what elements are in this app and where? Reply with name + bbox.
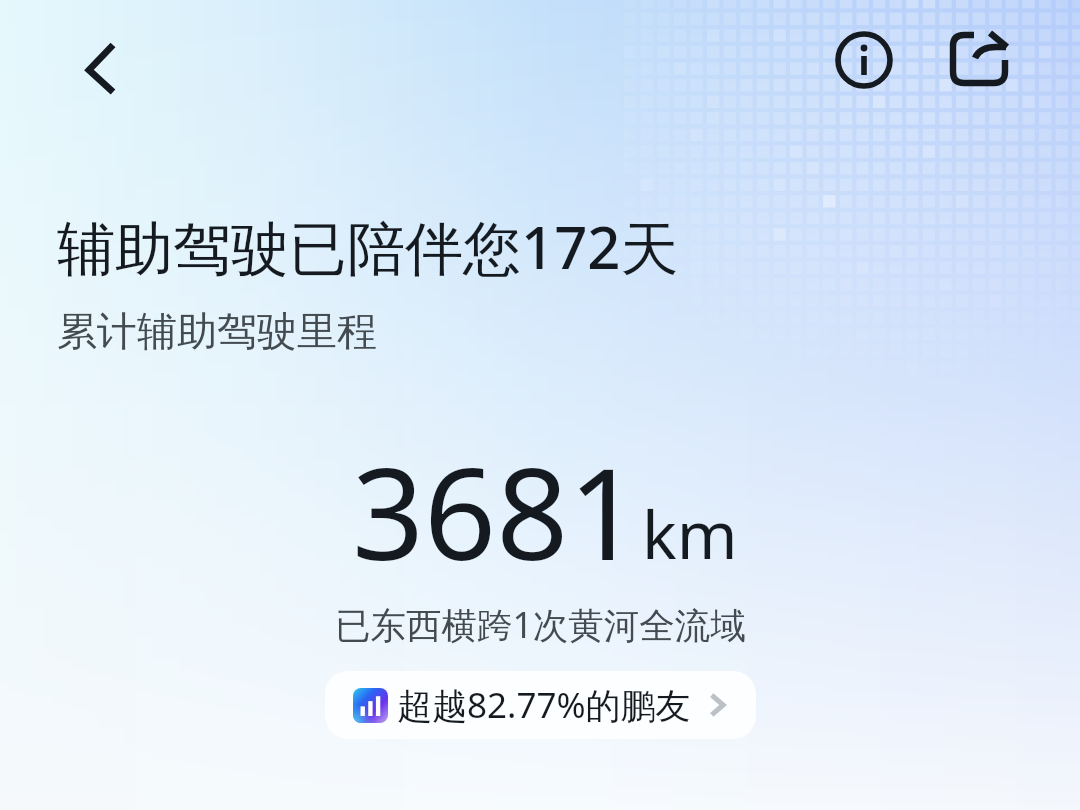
button[interactable]: Share <box>934 14 1026 106</box>
staticText: 辅助驾驶已陪伴您172天 <box>57 207 679 286</box>
button[interactable]: 超越82.77%的鹏友 <box>325 671 756 739</box>
button[interactable]: Back <box>58 30 138 110</box>
button[interactable]: Info <box>818 14 910 106</box>
staticText: 已东西横跨1次黄河全流域 <box>335 600 746 648</box>
staticText: 累计辅助驾驶里程 <box>57 306 377 356</box>
staticText: km <box>642 490 738 579</box>
staticText: 3681 <box>352 425 641 597</box>
staticText: 超越82.77%的鹏友 <box>397 681 691 729</box>
